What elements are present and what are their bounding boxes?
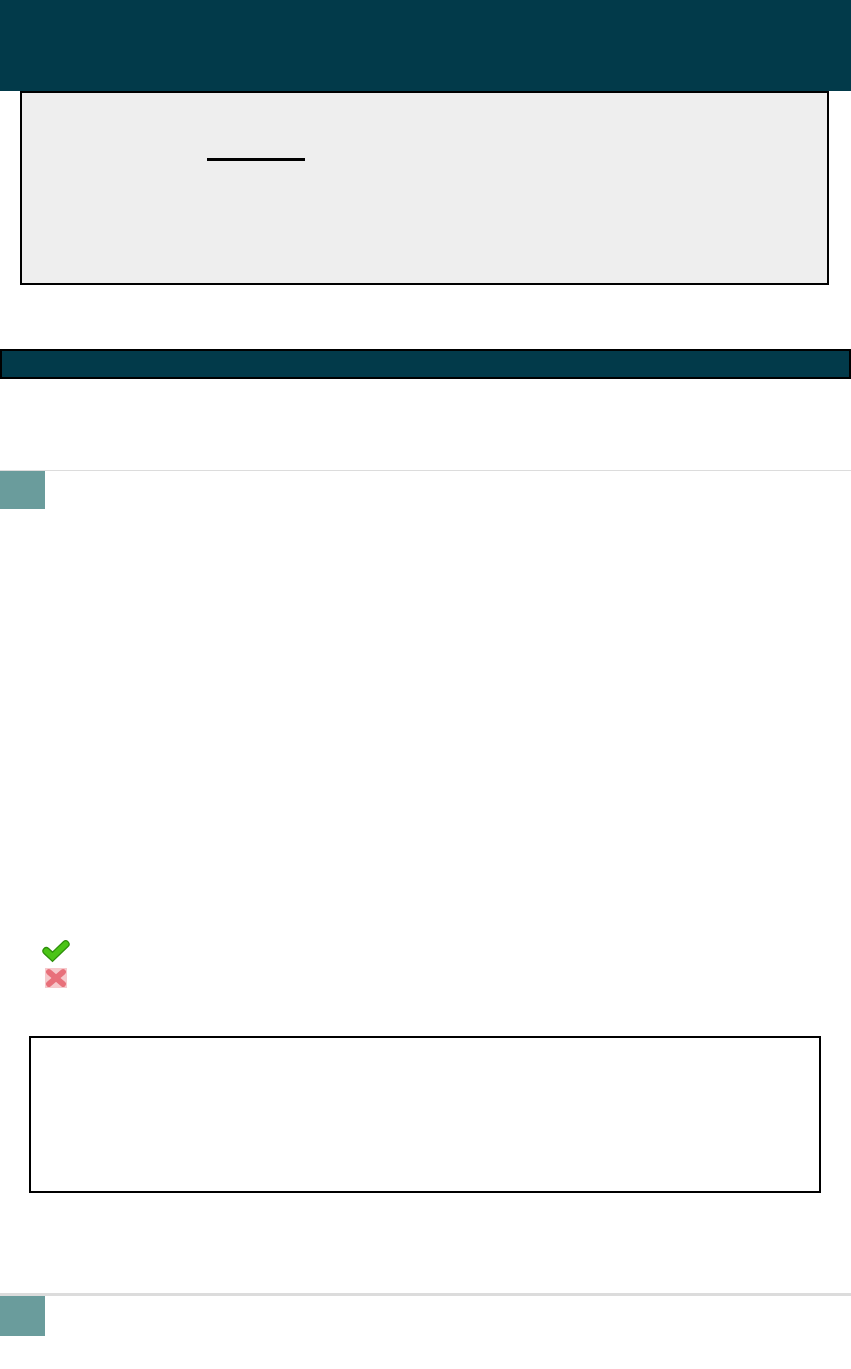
button[interactable]: [20, 91, 829, 285]
button[interactable]: [0, 349, 851, 379]
button[interactable]: Failure: [45, 968, 67, 988]
button[interactable]: Success: [45, 942, 67, 960]
button[interactable]: [29, 1036, 821, 1193]
